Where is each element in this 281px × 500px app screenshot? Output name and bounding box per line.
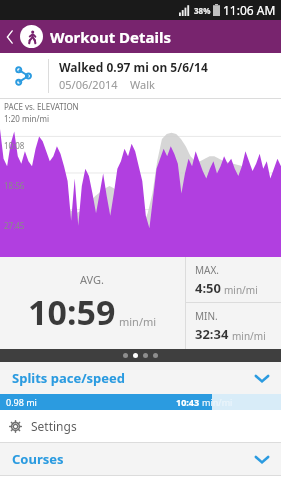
staticText: 38% [194, 5, 211, 16]
staticText: Courses [12, 450, 64, 468]
button[interactable]: Page 1 [123, 353, 128, 358]
staticText: 18:56 [4, 180, 25, 191]
button[interactable]: Courses [0, 443, 281, 475]
staticText: min/mi [232, 329, 266, 343]
staticText: Workout Details [50, 27, 172, 47]
staticText: 4:50 [195, 279, 221, 297]
button[interactable]: Settings [0, 410, 281, 442]
staticText: min/mi [224, 283, 258, 297]
button[interactable]: Walked 0.97 mi on 5/6/14 [0, 53, 281, 98]
button[interactable]: Page 4 [153, 353, 158, 358]
staticText: Settings [31, 418, 77, 434]
staticText: min/mi [119, 314, 157, 329]
staticText: Walk [130, 77, 155, 92]
staticText: 10:08 [4, 140, 25, 151]
staticText: PACE vs. ELEVATION [4, 101, 79, 112]
staticText: min/mi [202, 396, 233, 408]
staticText: 27:45 [4, 220, 25, 231]
button[interactable]: 0.98 mi [0, 394, 281, 410]
staticText: 10:59 [28, 289, 116, 335]
staticText: 11:06 AM [223, 2, 276, 18]
button[interactable]: Page 3 [143, 353, 148, 358]
staticText: 05/06/2014 [59, 77, 118, 92]
staticText: MAX. [195, 263, 219, 277]
staticText: 0.98 mi [6, 396, 37, 408]
staticText: 1:20 min/mi [4, 113, 49, 124]
staticText: Splits pace/speed [12, 369, 126, 387]
staticText: 10:43 [176, 396, 200, 408]
staticText: Walked 0.97 mi on 5/6/14 [59, 59, 208, 75]
button[interactable]: Page 2 [133, 353, 138, 358]
staticText: AVG. [80, 272, 105, 287]
staticText: MIN. [195, 309, 218, 323]
staticText: 32:34 [195, 325, 229, 343]
button[interactable]: Back [0, 20, 20, 53]
button[interactable]: Splits pace/speed [0, 362, 281, 394]
